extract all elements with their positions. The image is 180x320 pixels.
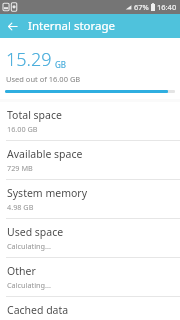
staticText: 729 MB bbox=[7, 163, 33, 173]
staticText: Cached data bbox=[7, 303, 69, 314]
staticText: Calculating... bbox=[7, 241, 51, 251]
staticText: 16.00 GB bbox=[7, 124, 38, 134]
staticText: 16:40 bbox=[157, 2, 177, 12]
button[interactable]: Used space bbox=[0, 219, 180, 257]
button[interactable]: Navigate up bbox=[0, 14, 24, 38]
staticText: System memory bbox=[7, 186, 88, 200]
button[interactable]: Available space bbox=[0, 141, 180, 179]
button[interactable]: System memory bbox=[0, 180, 180, 218]
staticText: 4.98 GB bbox=[7, 202, 34, 212]
staticText: Available space bbox=[7, 147, 83, 161]
staticText: Used space bbox=[7, 225, 64, 239]
staticText: 67% bbox=[134, 2, 149, 12]
staticText: 15.29 bbox=[6, 47, 52, 72]
staticText: Total space bbox=[7, 108, 62, 122]
staticText: GB bbox=[55, 59, 67, 70]
staticText: Used out of 16.00 GB bbox=[6, 74, 81, 84]
button[interactable]: Cached data bbox=[0, 297, 180, 320]
staticText: Other bbox=[7, 264, 36, 278]
button[interactable]: Other bbox=[0, 258, 180, 296]
button[interactable]: Total space bbox=[0, 102, 180, 140]
staticText: Calculating... bbox=[7, 280, 51, 290]
staticText: Internal storage bbox=[28, 18, 116, 34]
